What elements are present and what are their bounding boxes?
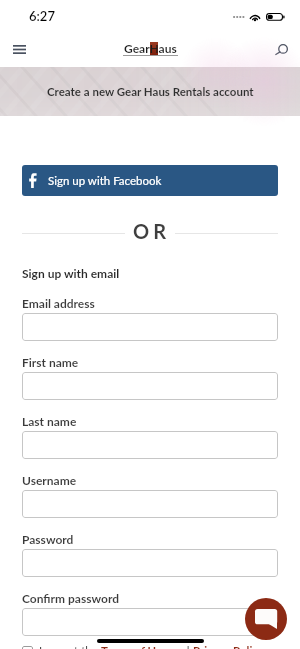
staticText: Last name xyxy=(22,414,77,428)
button[interactable] xyxy=(22,490,278,518)
button[interactable]: I accept the xyxy=(22,644,264,649)
staticText: and xyxy=(168,644,193,649)
staticText: Username xyxy=(22,473,77,487)
button[interactable]: Sign up with Facebook xyxy=(22,165,278,196)
staticText: GearHaus xyxy=(124,41,177,55)
staticText: Sign up with Facebook xyxy=(48,174,162,188)
staticText: 6:27 xyxy=(29,8,55,24)
staticText: Create a new Gear Haus Rentals account xyxy=(47,85,254,99)
staticText: OR xyxy=(133,219,171,243)
staticText: First name xyxy=(22,355,79,369)
button[interactable]: Open chat xyxy=(245,598,287,640)
button[interactable] xyxy=(22,549,278,577)
button[interactable] xyxy=(22,372,278,400)
button[interactable] xyxy=(22,431,278,459)
button[interactable] xyxy=(22,608,278,636)
staticText: Privacy Policy xyxy=(193,644,264,649)
staticText: Terms of Use xyxy=(101,644,168,649)
staticText: Password xyxy=(22,532,74,546)
staticText: I accept the xyxy=(39,644,101,649)
staticText: Confirm password xyxy=(22,591,120,605)
button[interactable]: Menu xyxy=(6,37,32,61)
staticText: Sign up with email xyxy=(22,266,120,280)
staticText: Email address xyxy=(22,296,95,310)
button[interactable] xyxy=(22,313,278,341)
button[interactable]: Search xyxy=(268,38,294,64)
